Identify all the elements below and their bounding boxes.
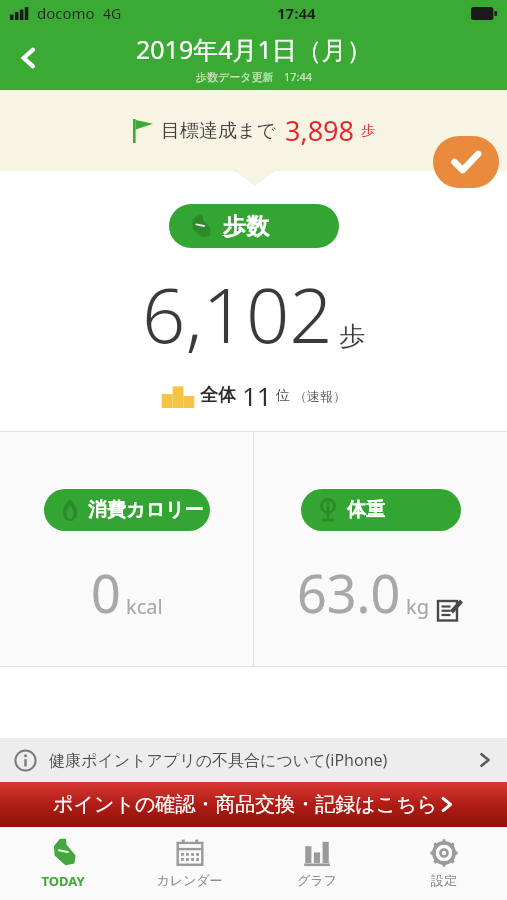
button[interactable]: 消費カロリー bbox=[0, 431, 253, 667]
staticText: 歩数 bbox=[223, 212, 269, 241]
button[interactable]: 全体 bbox=[161, 378, 346, 413]
button[interactable]: カレンダー bbox=[126, 827, 253, 900]
staticText: グラフ bbox=[297, 872, 337, 888]
staticText: 11 bbox=[242, 378, 272, 413]
button[interactable]: 設定 bbox=[380, 827, 507, 900]
staticText: 6,102 bbox=[142, 262, 333, 366]
button[interactable]: グラフ bbox=[253, 827, 380, 900]
button[interactable]: 歩数 bbox=[169, 204, 339, 248]
staticText: 4G bbox=[103, 4, 122, 23]
staticText: 3,898 bbox=[285, 112, 355, 149]
staticText: 0 bbox=[91, 557, 121, 628]
button[interactable]: 体重 bbox=[254, 431, 507, 667]
staticText: 17:44 bbox=[277, 3, 316, 23]
staticText: ポイントの確認・商品交換・記録はこちら bbox=[53, 792, 438, 817]
staticText: カレンダー bbox=[156, 872, 223, 888]
staticText: 位 bbox=[276, 387, 290, 405]
button[interactable]: Goal achieved bbox=[433, 136, 499, 188]
button[interactable]: Back bbox=[6, 35, 52, 81]
staticText: 63.0 bbox=[297, 557, 401, 628]
staticText: docomo bbox=[37, 3, 95, 23]
staticText: 歩 bbox=[361, 122, 375, 140]
button[interactable]: 健康ポイントアプリの不具合について(iPhone) bbox=[0, 738, 507, 782]
button[interactable]: TODAY bbox=[0, 827, 126, 900]
staticText: （速報） bbox=[294, 388, 346, 404]
staticText: 目標達成まで bbox=[161, 119, 276, 143]
staticText: 2019年4月1日（月） bbox=[136, 32, 372, 66]
button[interactable]: Edit weight bbox=[434, 594, 464, 624]
staticText: 17:44 bbox=[284, 69, 313, 84]
staticText: 体重 bbox=[347, 498, 385, 522]
staticText: 歩数データ更新 bbox=[196, 70, 274, 84]
staticText: TODAY bbox=[41, 872, 85, 890]
staticText: 健康ポイントアプリの不具合について(iPhone) bbox=[49, 749, 388, 771]
staticText: kg bbox=[406, 593, 429, 620]
staticText: 全体 bbox=[200, 384, 236, 407]
staticText: 歩 bbox=[339, 320, 365, 353]
staticText: 消費カロリー bbox=[88, 498, 204, 522]
staticText: kcal bbox=[126, 593, 163, 620]
staticText: 設定 bbox=[431, 872, 457, 888]
button[interactable]: ポイントの確認・商品交換・記録はこちら bbox=[0, 782, 507, 827]
